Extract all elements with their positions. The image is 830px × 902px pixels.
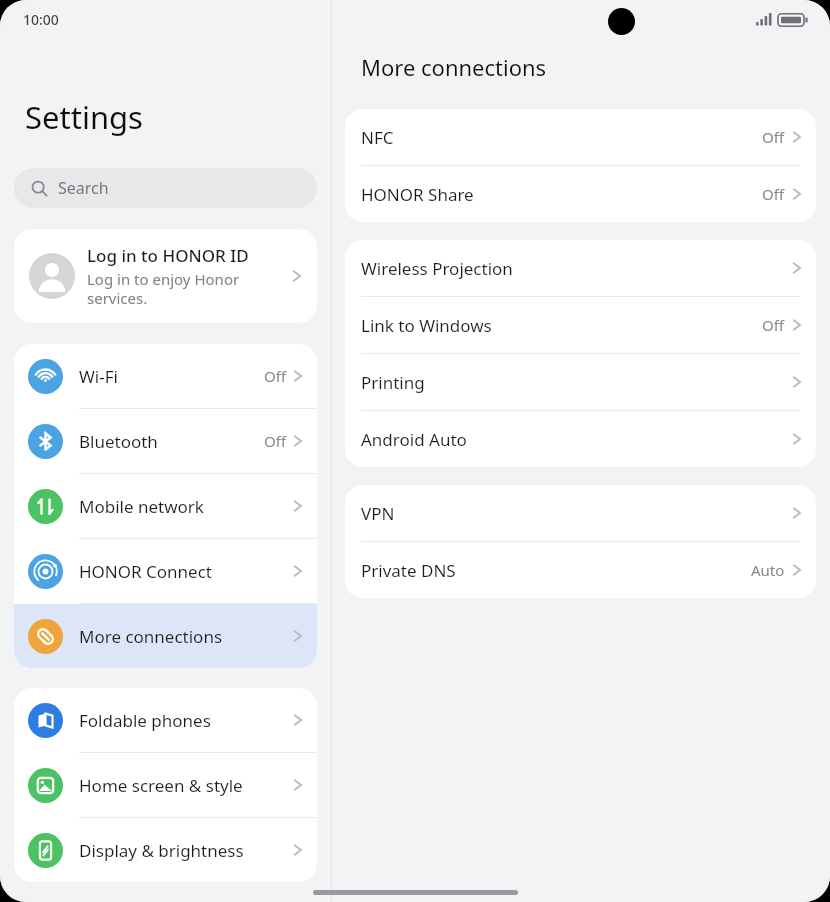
button[interactable]: Mobile network — [14, 474, 317, 538]
button[interactable]: Link to Windows — [345, 297, 816, 353]
staticText: Home screen & style — [79, 774, 293, 797]
staticText: NFC — [361, 126, 762, 149]
staticText: 10:00 — [23, 10, 59, 29]
staticText: Display & brightness — [79, 839, 293, 862]
staticText: VPN — [361, 502, 792, 525]
staticText: Off — [762, 315, 785, 335]
button[interactable]: Home screen & style — [14, 753, 317, 817]
button[interactable]: Display & brightness — [14, 818, 317, 882]
staticText: Off — [264, 431, 287, 451]
staticText: Link to Windows — [361, 314, 762, 337]
staticText: More connections — [361, 52, 547, 82]
button[interactable]: Wi-Fi — [14, 344, 317, 408]
staticText: HONOR Connect — [79, 560, 293, 583]
staticText: Search — [58, 177, 109, 199]
button[interactable]: More connections — [14, 604, 317, 668]
button[interactable]: HONOR Share — [345, 166, 816, 222]
staticText: Printing — [361, 371, 792, 394]
button[interactable]: Wireless Projection — [345, 240, 816, 296]
staticText: HONOR Share — [361, 183, 762, 206]
button[interactable]: Search — [14, 168, 317, 208]
staticText: Bluetooth — [79, 430, 264, 453]
button[interactable]: Foldable phones — [14, 688, 317, 752]
staticText: Log in to HONOR ID — [87, 244, 249, 267]
staticText: Off — [264, 366, 287, 386]
staticText: Mobile network — [79, 495, 293, 518]
button[interactable]: Android Auto — [345, 411, 816, 467]
button[interactable]: HONOR Connect — [14, 539, 317, 603]
staticText: Foldable phones — [79, 709, 293, 732]
staticText: Off — [762, 184, 785, 204]
staticText: Off — [762, 127, 785, 147]
staticText: Private DNS — [361, 559, 751, 582]
button[interactable]: Private DNS — [345, 542, 816, 598]
button[interactable]: Printing — [345, 354, 816, 410]
button[interactable]: Bluetooth — [14, 409, 317, 473]
staticText: Auto — [751, 560, 785, 580]
staticText: Wi-Fi — [79, 365, 264, 388]
staticText: Wireless Projection — [361, 257, 792, 280]
staticText: Log in to enjoy Honor services. — [87, 269, 240, 308]
staticText: More connections — [79, 625, 293, 648]
button[interactable]: NFC — [345, 109, 816, 165]
button[interactable]: Log in to HONOR ID — [14, 229, 317, 323]
staticText: Android Auto — [361, 428, 792, 451]
staticText: Settings — [25, 96, 143, 138]
button[interactable]: VPN — [345, 485, 816, 541]
